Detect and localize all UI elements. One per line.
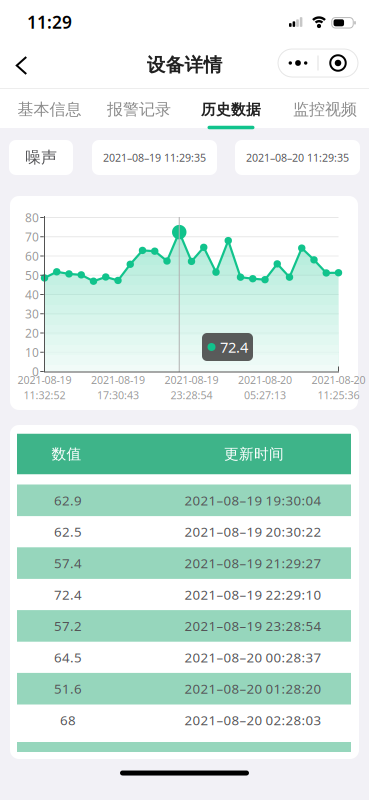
staticText: 更新时间 [224,445,284,463]
staticText: 11:29 [27,10,72,33]
staticText: 2021-08-20 [238,373,292,387]
staticText: 17:30:43 [97,388,139,402]
staticText: 20 [25,325,39,341]
staticText: 40 [25,286,39,302]
staticText: 2021–08–20 02:28:03 [184,711,321,729]
button[interactable]: 报警记录 [93,90,185,129]
button[interactable]: More [278,49,318,77]
staticText: 50 [25,267,39,283]
staticText: 62.9 [54,491,82,509]
staticText: 数值 [51,445,81,463]
staticText: 05:27:13 [244,388,286,402]
staticText: 57.4 [54,554,82,572]
staticText: 2021–08–20 00:28:37 [184,648,321,666]
staticText: 2021–08–19 19:30:04 [184,491,321,509]
staticText: 2021-08-20 [311,373,365,387]
button[interactable]: 噪声 [9,140,73,175]
staticText: 2021–08–19 22:29:10 [184,586,321,603]
staticText: 2021-08-19 [17,373,71,387]
staticText: 60 [25,248,39,264]
staticText: 80 [25,209,39,225]
button[interactable]: 历史数据 [185,90,277,129]
staticText: 2021–08–19 20:30:22 [184,523,321,540]
staticText: 11:25:36 [317,388,359,402]
staticText: 72.4 [220,337,248,357]
staticText: 2021-08-19 [91,373,145,387]
staticText: 基本信息 [17,100,81,119]
staticText: 57.2 [54,617,82,635]
button[interactable]: 基本信息 [3,90,95,129]
button[interactable]: Back [7,47,36,84]
staticText: 2021–08–19 11:29:35 [103,150,206,165]
staticText: 2021-08-19 [164,373,218,387]
staticText: 噪声 [25,148,57,167]
button[interactable]: 2021–08–20 11:29:35 [235,140,360,175]
staticText: 2021–08–19 23:28:54 [184,617,321,635]
staticText: 64.5 [54,648,82,666]
staticText: 11:32:52 [23,388,65,402]
staticText: 报警记录 [107,100,171,119]
staticText: 历史数据 [201,100,261,118]
staticText: 10 [25,344,39,360]
staticText: 62.5 [54,523,82,540]
staticText: 2021–08–20 11:29:35 [246,150,349,165]
staticText: 51.6 [54,680,82,697]
button[interactable]: 监控视频 [279,90,369,129]
staticText: 23:28:54 [170,388,212,402]
staticText: 70 [25,229,39,245]
staticText: 30 [25,306,39,322]
staticText: 2021–08–20 01:28:20 [184,680,321,697]
staticText: 72.4 [54,586,82,603]
staticText: 0 [32,363,39,379]
staticText: 2021–08–19 21:29:27 [184,554,321,572]
button[interactable]: Close [318,49,358,77]
staticText: 设备详情 [146,53,222,76]
staticText: 监控视频 [293,100,357,119]
button[interactable]: 2021–08–19 11:29:35 [92,140,217,175]
staticText: 68 [60,711,76,729]
